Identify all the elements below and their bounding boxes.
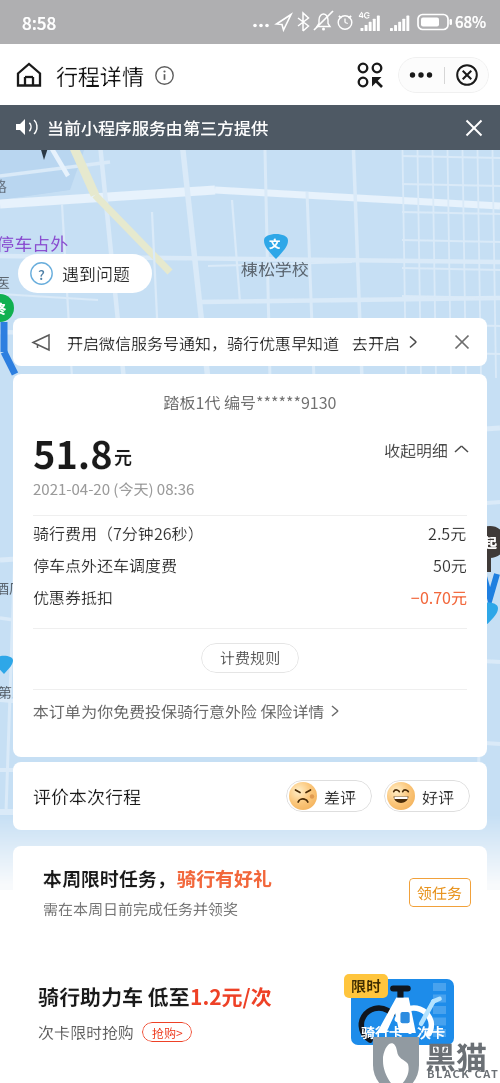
staticText: 骑行费用（7分钟26秒） — [33, 521, 204, 544]
staticText: 需在本周日前完成任务并领奖 — [43, 898, 239, 920]
button[interactable]: Mini program — [350, 55, 390, 95]
staticText: 终 — [0, 299, 7, 318]
button[interactable]: Dismiss — [462, 116, 486, 140]
button[interactable]: Info — [155, 66, 174, 85]
staticText: 收起明细 — [384, 438, 449, 461]
staticText: 文 — [269, 235, 280, 251]
staticText: 去开启 — [352, 331, 401, 354]
staticText: 差评 — [324, 785, 357, 808]
button[interactable]: Close notice — [451, 331, 473, 353]
staticText: 第三 — [0, 682, 26, 702]
staticText: 元 — [114, 443, 132, 469]
staticText: −0.70元 — [411, 585, 467, 608]
staticText: 开启微信服务号通知，骑行优惠早知道 — [67, 331, 340, 354]
staticText: 黑猫 — [425, 1033, 487, 1078]
staticText: BLACK CAT — [427, 1065, 500, 1081]
staticText: 本订单为你免费投保骑行意外险 保险详情 — [33, 699, 325, 722]
staticText: 抢购> — [152, 1024, 183, 1041]
staticText: 骑行助力车 低至 — [38, 981, 190, 1011]
button[interactable]: 收起明细 — [384, 438, 468, 461]
staticText: 领任务 — [417, 882, 463, 904]
button[interactable]: ? — [18, 254, 152, 293]
staticText: 2.5元 — [428, 521, 467, 544]
staticText: ? — [38, 264, 45, 284]
staticText: 医 — [0, 272, 10, 292]
staticText: 1.2元/次 — [190, 981, 272, 1011]
other: Announcement — [15, 116, 39, 140]
button[interactable]: 骑行助力车 低至 — [13, 951, 487, 1073]
staticText: 评价本次行程 — [33, 783, 141, 809]
button[interactable]: 差评 — [286, 780, 372, 812]
staticText: 68% — [455, 11, 487, 33]
button[interactable]: Home — [12, 58, 46, 92]
button[interactable]: 本订单为你免费投保骑行意外险 保险详情 — [33, 699, 343, 722]
staticText: 起 — [483, 532, 497, 552]
staticText: 本周限时任务， — [43, 864, 177, 892]
staticText: 50元 — [433, 553, 467, 576]
button[interactable]: 领任务 — [409, 878, 471, 907]
staticText: 好评 — [422, 785, 455, 808]
staticText: 行程详情 — [56, 59, 145, 91]
staticText: 51.8 — [33, 425, 113, 473]
button[interactable]: 开启微信服务号通知，骑行优惠早知道 — [13, 318, 487, 366]
staticText: 骑行有好礼 — [177, 864, 273, 892]
staticText: 骑行卡·次卡 — [361, 1022, 445, 1042]
button[interactable]: 计费规则 — [201, 643, 299, 673]
staticText: 踏板1代 编号******9130 — [13, 390, 487, 413]
staticText: 优惠券抵扣 — [33, 585, 114, 608]
staticText: 停车点外还车调度费 — [33, 553, 178, 576]
staticText: 限时 — [351, 975, 382, 997]
button[interactable]: 好评 — [384, 780, 470, 812]
button[interactable]: More — [398, 57, 444, 93]
staticText: 酒厂 — [0, 578, 23, 598]
staticText: 棟松学校 — [241, 256, 309, 281]
staticText: 遇到问题 — [62, 261, 130, 286]
staticText: 2021-04-20 (今天) 08:36 — [33, 478, 195, 500]
staticText: 8:58 — [22, 10, 57, 35]
staticText: 当前小程序服务由第三方提供 — [47, 115, 268, 140]
button[interactable]: Close — [445, 57, 489, 93]
staticText: 次卡限时抢购 — [38, 1020, 135, 1043]
staticText: -停车占外 — [0, 230, 69, 256]
staticText: 路 — [0, 175, 8, 197]
staticText: 计费规则 — [220, 647, 281, 669]
button[interactable]: 本周限时任务， — [13, 846, 487, 938]
